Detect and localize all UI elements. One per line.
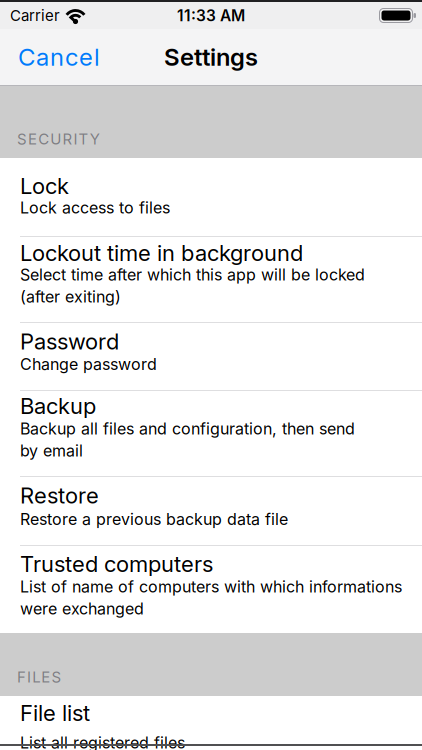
staticText: Cancel	[18, 42, 100, 71]
staticText: List all registered files	[20, 733, 185, 750]
staticText: (after exiting)	[20, 287, 121, 306]
button[interactable]: Password	[0, 323, 422, 391]
staticText: File list	[20, 700, 90, 726]
staticText: SECURITY	[17, 130, 100, 148]
staticText: Lockout time in background	[20, 240, 303, 266]
button[interactable]: File list	[0, 696, 422, 750]
staticText: by email	[20, 441, 83, 460]
button[interactable]: Backup	[0, 391, 422, 477]
staticText: FILES	[17, 668, 61, 686]
staticText: Lock access to files	[20, 198, 170, 217]
staticText: Password	[20, 328, 119, 355]
staticText: Settings	[164, 42, 258, 71]
button[interactable]: Lockout time in background	[0, 237, 422, 323]
staticText: Trusted computers	[20, 551, 213, 577]
button[interactable]: Lock	[0, 158, 422, 237]
staticText: Lock	[20, 173, 69, 199]
staticText: List of name of computers with which inf…	[20, 577, 402, 596]
staticText: Backup	[20, 393, 96, 419]
staticText: Restore	[20, 482, 99, 509]
staticText: Restore a previous backup data file	[20, 510, 288, 529]
button[interactable]: Trusted computers	[0, 546, 422, 633]
staticText: Change password	[20, 355, 157, 374]
staticText: were exchanged	[20, 599, 144, 618]
staticText: Carrier	[10, 6, 60, 24]
staticText: Backup all files and configuration, then…	[20, 419, 355, 438]
button[interactable]: Restore	[0, 477, 422, 546]
button[interactable]: Cancel	[0, 42, 100, 71]
staticText: 11:33 AM	[177, 6, 245, 25]
staticText: Select time after which this app will be…	[20, 265, 365, 284]
